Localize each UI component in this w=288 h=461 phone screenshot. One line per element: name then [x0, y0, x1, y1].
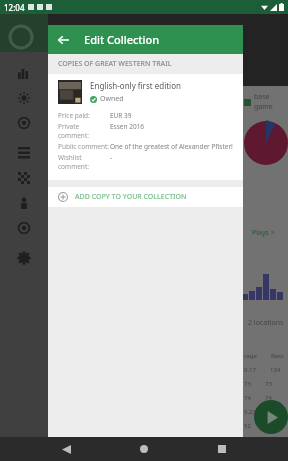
button[interactable]: Home	[132, 437, 156, 461]
staticText: -	[110, 153, 113, 162]
staticText: 73	[265, 380, 272, 388]
staticText: rage	[244, 352, 257, 360]
staticText: Best	[271, 352, 284, 360]
button[interactable]: ADD COPY TO YOUR COLLECTION	[48, 187, 243, 207]
button[interactable]: Log play	[254, 400, 288, 434]
staticText: base game	[254, 92, 288, 112]
staticText: 52	[244, 422, 251, 430]
staticText: 5.23	[244, 408, 256, 416]
button[interactable]: Navigation item	[0, 190, 48, 215]
button[interactable]: Back	[48, 25, 77, 54]
button[interactable]: Navigation item	[0, 215, 48, 240]
staticText: ADD COPY TO YOUR COLLECTION	[75, 192, 187, 202]
button[interactable]: Navigation item	[0, 165, 48, 190]
staticText: Public comment:	[58, 142, 110, 151]
staticText: 124	[270, 366, 281, 374]
button[interactable]: Back	[54, 437, 78, 461]
staticText: Owned	[100, 94, 124, 104]
staticText: English-only first edition	[90, 80, 181, 91]
staticText: 2 locations	[248, 318, 284, 328]
staticText: Essen 2016	[110, 122, 145, 131]
staticText: Wishlist comment:	[58, 153, 110, 171]
button[interactable]: Recent apps	[210, 437, 234, 461]
button[interactable]: Navigation item	[0, 85, 48, 110]
staticText: Price paid:	[58, 111, 110, 120]
staticText: 74	[265, 394, 272, 402]
staticText: 73	[244, 380, 251, 388]
staticText: Edit Collection	[84, 32, 160, 47]
button[interactable]: Navigation item	[0, 60, 48, 85]
button[interactable]: Navigation item	[0, 245, 48, 270]
button[interactable]: Navigation item	[0, 110, 48, 135]
staticText: EUR 39	[110, 111, 132, 120]
staticText: 74	[244, 394, 251, 402]
button[interactable]: Navigation item	[0, 140, 48, 165]
staticText: One of the greatest of Alexander Pfister…	[110, 142, 233, 151]
staticText: 12:04	[4, 2, 25, 13]
staticText: COPIES OF GREAT WESTERN TRAIL	[58, 59, 172, 69]
staticText: 0.17	[244, 366, 256, 374]
staticText: Plays >	[252, 228, 275, 238]
staticText: Private comment:	[58, 122, 110, 140]
button[interactable]: English-only first edition	[48, 74, 243, 180]
